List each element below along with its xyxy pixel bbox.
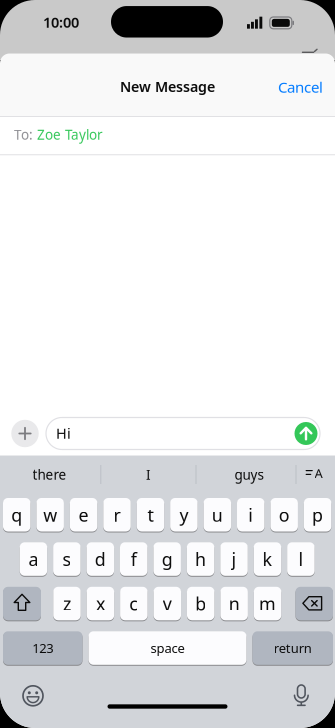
staticText: c [129,592,138,615]
staticText: Zoe Taylor [37,125,103,143]
staticText: f [131,547,137,571]
staticText: To: [14,125,33,143]
staticText: Cancel [278,77,323,97]
staticText: I [146,465,151,483]
staticText: New Message [120,77,215,96]
staticText: z [63,592,71,615]
staticText: there [32,465,66,483]
staticText: u [212,503,223,526]
staticText: space [150,639,184,657]
staticText: guys [234,465,263,483]
staticText: a [28,547,38,571]
staticText: return [274,639,312,657]
staticText: p [312,503,323,526]
staticText: k [262,547,272,571]
staticText: 10:00 [43,12,79,32]
staticText: o [279,503,290,526]
staticText: b [195,592,206,615]
staticText: r [113,503,120,526]
staticText: v [163,592,172,615]
staticText: l [298,547,303,571]
staticText: h [195,547,206,571]
staticText: y [179,503,188,526]
staticText: q [11,503,22,526]
staticText: j [231,547,236,571]
staticText: m [259,592,276,615]
staticText: d [95,547,106,571]
staticText: t [147,503,153,526]
staticText: x [96,592,105,615]
staticText: 123 [32,639,53,657]
staticText: n [229,592,240,615]
staticText: s [62,547,71,571]
staticText: Hi [56,424,71,443]
staticText: A [315,465,323,482]
staticText: g [162,547,173,571]
staticText: w [43,503,57,526]
staticText: e [79,503,89,526]
staticText: i [248,503,253,526]
